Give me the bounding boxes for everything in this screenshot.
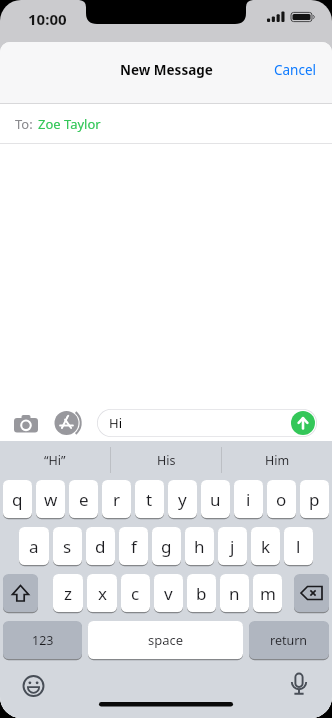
staticText: j xyxy=(230,535,235,558)
button[interactable]: p xyxy=(300,480,329,518)
button[interactable]: 123 xyxy=(3,621,82,659)
staticText: r xyxy=(113,488,121,511)
staticText: Hi xyxy=(109,414,122,432)
staticText: His xyxy=(157,452,176,469)
button[interactable]: i xyxy=(234,480,263,518)
button[interactable] xyxy=(294,574,329,612)
button[interactable]: m xyxy=(253,574,282,612)
button[interactable]: b xyxy=(187,574,216,612)
staticText: x xyxy=(98,582,107,605)
button[interactable]: h xyxy=(185,527,214,565)
staticText: v xyxy=(164,582,173,605)
button[interactable]: q xyxy=(3,480,32,518)
button[interactable] xyxy=(291,411,315,435)
button[interactable]: f xyxy=(119,527,148,565)
button[interactable]: v xyxy=(154,574,183,612)
staticText: k xyxy=(261,535,271,558)
button[interactable]: s xyxy=(53,527,82,565)
staticText: o xyxy=(276,488,287,511)
staticText: m xyxy=(260,582,276,605)
button[interactable]: r xyxy=(102,480,131,518)
button[interactable]: u xyxy=(201,480,230,518)
staticText: g xyxy=(161,535,172,558)
staticText: “Hi” xyxy=(44,452,66,469)
staticText: Zoe Taylor xyxy=(38,115,101,133)
button[interactable]: x xyxy=(87,574,117,612)
button[interactable]: d xyxy=(86,527,115,565)
staticText: Cancel xyxy=(274,61,317,79)
button[interactable]: Cancel xyxy=(274,61,317,79)
staticText: t xyxy=(146,488,153,511)
button[interactable]: c xyxy=(121,574,150,612)
button[interactable]: n xyxy=(220,574,249,612)
staticText: 123 xyxy=(32,632,54,649)
staticText: 10:00 xyxy=(28,9,67,29)
button[interactable] xyxy=(54,410,79,436)
staticText: u xyxy=(210,488,221,511)
button[interactable]: e xyxy=(69,480,98,518)
staticText: space xyxy=(148,631,184,649)
button[interactable]: space xyxy=(88,621,243,659)
button[interactable] xyxy=(3,574,38,612)
button[interactable]: g xyxy=(152,527,181,565)
button[interactable]: His xyxy=(111,441,221,479)
button[interactable]: t xyxy=(135,480,164,518)
staticText: i xyxy=(246,488,251,511)
staticText: p xyxy=(309,488,320,511)
button[interactable]: k xyxy=(251,527,280,565)
button[interactable] xyxy=(14,414,38,432)
staticText: q xyxy=(12,488,23,511)
staticText: return xyxy=(270,632,308,649)
button[interactable]: o xyxy=(267,480,296,518)
staticText: h xyxy=(194,535,205,558)
staticText: a xyxy=(29,535,39,558)
staticText: To: xyxy=(15,115,33,133)
staticText: s xyxy=(63,535,72,558)
staticText: b xyxy=(196,582,207,605)
staticText: New Message xyxy=(120,61,213,79)
button[interactable]: y xyxy=(168,480,197,518)
staticText: l xyxy=(296,535,301,558)
staticText: z xyxy=(64,582,72,605)
staticText: c xyxy=(131,582,140,605)
button[interactable]: w xyxy=(36,480,65,518)
button[interactable]: “Hi” xyxy=(0,441,110,479)
button[interactable]: z xyxy=(53,574,83,612)
button[interactable]: l xyxy=(284,527,313,565)
button[interactable]: a xyxy=(19,527,49,565)
staticText: d xyxy=(95,535,106,558)
staticText: n xyxy=(229,582,240,605)
staticText: e xyxy=(79,488,89,511)
staticText: w xyxy=(44,488,58,511)
button[interactable]: Him xyxy=(222,441,332,479)
button[interactable]: Hi xyxy=(97,409,317,437)
button[interactable]: To: xyxy=(15,104,332,143)
staticText: f xyxy=(131,535,137,558)
staticText: Him xyxy=(265,452,290,469)
staticText: y xyxy=(178,488,187,511)
button[interactable]: return xyxy=(249,621,329,659)
button[interactable]: j xyxy=(218,527,247,565)
